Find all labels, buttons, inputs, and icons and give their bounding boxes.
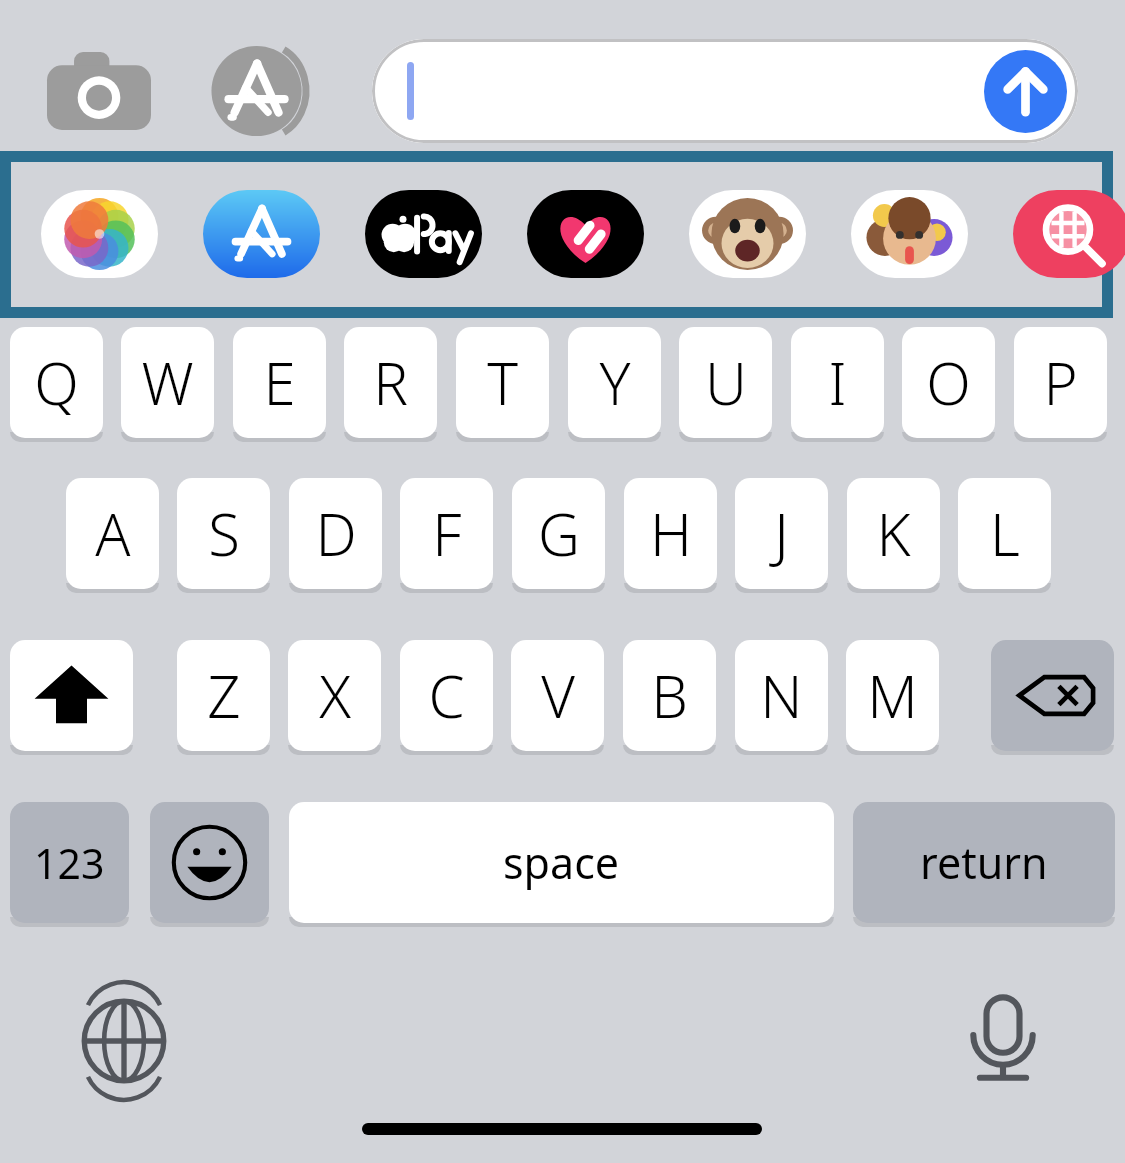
button[interactable]: U — [679, 327, 772, 438]
button[interactable]: F — [400, 478, 493, 589]
button[interactable]: T — [456, 327, 549, 438]
button[interactable]: V — [511, 640, 604, 751]
staticText: G — [538, 494, 580, 573]
button[interactable]: Y — [568, 327, 661, 438]
button[interactable]: C — [400, 640, 493, 751]
staticText: B — [651, 656, 688, 735]
staticText: K — [876, 494, 911, 573]
staticText: N — [760, 656, 803, 735]
staticText: J — [774, 494, 789, 573]
staticText: 123 — [34, 835, 105, 891]
button[interactable]: O — [902, 327, 995, 438]
staticText: S — [208, 494, 240, 573]
button[interactable]: 123 — [10, 802, 129, 923]
staticText: H — [650, 494, 692, 573]
button[interactable]: Z — [177, 640, 270, 751]
button[interactable]: J — [735, 478, 828, 589]
staticText: M — [867, 656, 918, 735]
button[interactable]: B — [623, 640, 716, 751]
staticText: E — [263, 343, 296, 422]
staticText: L — [990, 494, 1020, 573]
button[interactable]: Q — [10, 327, 103, 438]
button[interactable]: G — [512, 478, 605, 589]
staticText: Z — [207, 656, 241, 735]
button[interactable]: R — [344, 327, 437, 438]
button[interactable]: E — [233, 327, 326, 438]
button[interactable]: Next keyboard — [71, 988, 177, 1094]
staticText: V — [541, 656, 575, 735]
staticText: U — [705, 343, 747, 422]
staticText: space — [503, 833, 620, 892]
button[interactable]: Memoji Stickers — [851, 190, 968, 278]
button[interactable]: space — [289, 802, 834, 923]
button[interactable]: H — [624, 478, 717, 589]
staticText: T — [487, 343, 518, 422]
button[interactable]: P — [1014, 327, 1107, 438]
staticText: O — [926, 343, 971, 422]
button[interactable]: Send — [372, 39, 1078, 143]
staticText: W — [141, 343, 194, 422]
button[interactable]: N — [735, 640, 828, 751]
staticText: D — [315, 494, 357, 573]
button[interactable]: A — [66, 478, 159, 589]
button[interactable]: App Store — [203, 190, 320, 278]
button[interactable]: Apple Pay — [365, 190, 482, 278]
staticText: Y — [599, 343, 631, 422]
button[interactable]: Dictate — [948, 982, 1058, 1100]
button[interactable]: L — [958, 478, 1051, 589]
button[interactable]: K — [847, 478, 940, 589]
staticText: I — [828, 343, 847, 422]
staticText: F — [432, 494, 462, 573]
button[interactable]: App Store — [210, 42, 308, 140]
button[interactable]: X — [288, 640, 381, 751]
button[interactable]: D — [289, 478, 382, 589]
button[interactable]: Send — [984, 50, 1067, 133]
staticText: C — [428, 656, 465, 735]
staticText: A — [95, 494, 131, 573]
staticText: X — [319, 656, 351, 735]
staticText: R — [373, 343, 408, 422]
button[interactable]: I — [791, 327, 884, 438]
staticText: return — [920, 833, 1048, 892]
button[interactable]: Shift — [10, 640, 133, 751]
button[interactable]: M — [846, 640, 939, 751]
button[interactable]: Camera — [47, 52, 151, 130]
button[interactable]: S — [177, 478, 270, 589]
button[interactable]: W — [121, 327, 214, 438]
button[interactable]: Emoji keyboard — [150, 802, 269, 923]
button[interactable]: Fitness — [527, 190, 644, 278]
staticText: Q — [34, 343, 79, 422]
button[interactable]: return — [853, 802, 1115, 923]
staticText: P — [1043, 343, 1078, 422]
button[interactable]: Photos — [41, 190, 158, 278]
button[interactable]: Backspace — [991, 640, 1114, 751]
button[interactable]: Image Search — [1013, 190, 1125, 278]
button[interactable]: Memoji — [689, 190, 806, 278]
